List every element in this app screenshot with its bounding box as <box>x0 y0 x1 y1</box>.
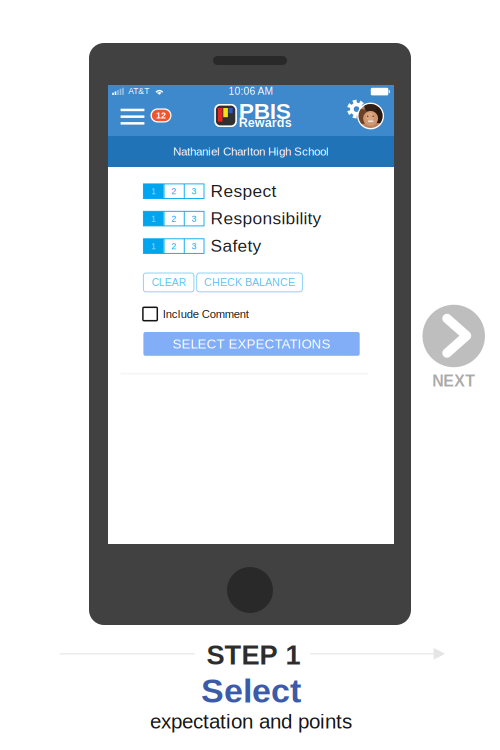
button[interactable]: CHECK BALANCE <box>197 273 302 292</box>
staticText: 3 <box>191 186 196 196</box>
staticText: 3 <box>191 241 196 251</box>
staticText: 3 <box>191 214 196 223</box>
staticText: STEP 1 <box>206 640 300 670</box>
staticText: Include Comment <box>163 308 249 320</box>
button[interactable]: Safety point value <box>143 239 204 253</box>
button[interactable]: Include Comment <box>143 307 288 321</box>
button[interactable]: 12 notifications <box>150 108 171 122</box>
button[interactable]: CLEAR <box>143 273 194 292</box>
staticText: Select <box>201 672 301 710</box>
staticText: 2 <box>171 186 176 196</box>
staticText: SELECT EXPECTATIONS <box>173 336 331 351</box>
staticText: 2 <box>171 241 176 251</box>
staticText: NEXT <box>432 372 475 390</box>
staticText: 10:06 AM <box>228 85 273 97</box>
staticText: Safety <box>210 236 261 255</box>
staticText: 12 <box>156 110 166 120</box>
staticText: CHECK BALANCE <box>204 276 295 288</box>
staticText: 1 <box>151 214 156 223</box>
staticText: expectation and points <box>150 710 352 733</box>
button[interactable]: Respect point value <box>143 184 204 198</box>
button[interactable]: SELECT EXPECTATIONS <box>143 332 360 356</box>
staticText: CLEAR <box>152 277 186 288</box>
button[interactable]: Next <box>422 304 500 392</box>
staticText: PBIS <box>239 98 291 124</box>
button[interactable]: Menu <box>117 104 145 125</box>
staticText: 1 <box>151 186 156 196</box>
staticText: Nathaniel Charlton High School <box>173 145 329 158</box>
button[interactable]: Settings and profile <box>344 98 394 132</box>
staticText: Responsibility <box>210 209 321 228</box>
staticText: Rewards <box>239 116 292 130</box>
staticText: Respect <box>210 181 276 201</box>
staticText: 1 <box>151 241 156 251</box>
staticText: AT&T <box>128 86 149 96</box>
staticText: 2 <box>171 214 176 223</box>
button[interactable]: Responsibility point value <box>143 211 204 226</box>
